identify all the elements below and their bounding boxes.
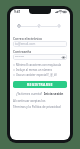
button[interactable]: Paso 3 <box>57 24 61 28</box>
staticText: Al continuar aceptas los <box>13 99 46 103</box>
button[interactable]: Inicia sesión <box>44 92 64 96</box>
staticText: tu@email.com <box>15 42 36 46</box>
button[interactable]: •••••••• <box>13 54 67 60</box>
staticText: Mínimo 8 caracteres con mayúscula <box>16 63 62 67</box>
staticText: ¿Ya tienes cuenta? <box>16 92 44 96</box>
button[interactable]: Paso 2 <box>37 24 41 28</box>
staticText: Contraseña <box>13 49 32 53</box>
button[interactable]: REGISTRARSE <box>13 81 67 88</box>
staticText: 3 <box>58 24 60 28</box>
button[interactable]: Términos y la Política de privacidad <box>13 105 61 109</box>
staticText: •••••••• <box>15 55 25 59</box>
staticText: 2 <box>38 24 40 28</box>
staticText: Usa un carácter especial (!, @, #) <box>16 73 57 77</box>
staticText: Incluye al menos un número <box>16 68 53 72</box>
button[interactable]: tu@email.com <box>13 41 67 47</box>
button[interactable]: Paso 1 <box>17 24 21 28</box>
staticText: 9:41 <box>14 10 21 14</box>
other: Mostrar contraseña <box>62 56 65 59</box>
staticText: Correo electrónico <box>13 36 43 40</box>
staticText: 1 <box>18 24 20 28</box>
staticText: REGISTRARSE <box>27 82 53 87</box>
